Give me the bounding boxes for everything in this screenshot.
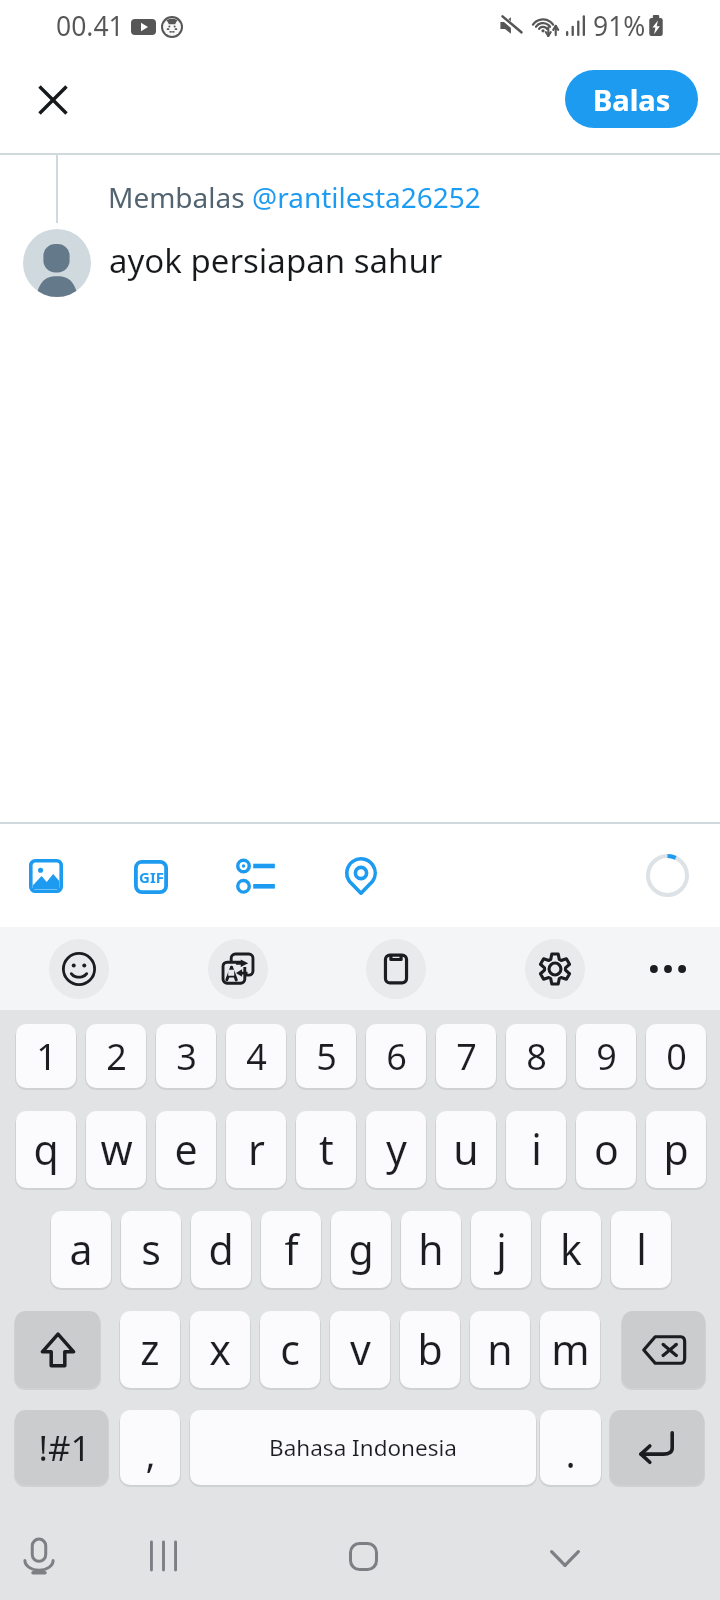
button[interactable]: u <box>436 1111 496 1188</box>
button[interactable]: Recent apps <box>138 1531 188 1581</box>
staticText: f <box>284 1221 299 1277</box>
staticText: 8 <box>526 1032 547 1081</box>
button[interactable]: b <box>400 1311 460 1388</box>
button[interactable]: x <box>190 1311 250 1388</box>
staticText: e <box>174 1121 198 1177</box>
staticText: l <box>636 1221 647 1277</box>
button[interactable]: y <box>366 1111 426 1188</box>
button[interactable]: Enter <box>610 1410 704 1485</box>
button[interactable]: 4 <box>226 1024 286 1088</box>
staticText: GIF <box>139 867 164 887</box>
staticText: Balas <box>593 80 671 119</box>
button[interactable]: r <box>226 1111 286 1188</box>
staticText: 4 <box>246 1032 267 1081</box>
button[interactable]: Shift <box>15 1311 100 1388</box>
staticText: 91% <box>593 8 646 44</box>
button[interactable]: s <box>121 1211 181 1288</box>
button[interactable]: p <box>646 1111 706 1188</box>
button[interactable]: 5 <box>296 1024 356 1088</box>
staticText: v <box>350 1321 371 1377</box>
button[interactable]: a <box>51 1211 111 1288</box>
button[interactable]: Clipboard <box>366 939 426 999</box>
button[interactable]: 3 <box>156 1024 216 1088</box>
staticText: h <box>418 1221 444 1277</box>
button[interactable]: w <box>86 1111 146 1188</box>
button[interactable]: Add photo <box>29 859 63 893</box>
staticText: z <box>140 1321 160 1377</box>
staticText: b <box>417 1321 443 1377</box>
staticText: Membalas <box>108 178 252 216</box>
button[interactable]: 9 <box>576 1024 636 1088</box>
staticText: x <box>209 1321 231 1377</box>
button[interactable]: More options <box>638 939 698 999</box>
button[interactable]: 6 <box>366 1024 426 1088</box>
button[interactable]: Voice input <box>14 1531 64 1581</box>
staticText: Bahasa Indonesia <box>269 1432 457 1463</box>
staticText: s <box>141 1221 161 1277</box>
button[interactable]: j <box>471 1211 531 1288</box>
staticText: 7 <box>456 1032 477 1081</box>
staticText: m <box>551 1321 590 1377</box>
button[interactable]: v <box>330 1311 390 1388</box>
staticText: d <box>208 1221 234 1277</box>
staticText: o <box>594 1121 619 1177</box>
staticText: n <box>487 1321 513 1377</box>
button[interactable]: Keyboard settings <box>525 939 585 999</box>
staticText: . <box>565 1427 576 1479</box>
button[interactable]: 8 <box>506 1024 566 1088</box>
staticText: j <box>496 1221 507 1277</box>
staticText: 9 <box>596 1032 617 1081</box>
staticText: g <box>348 1221 374 1277</box>
button[interactable]: q <box>16 1111 76 1188</box>
button[interactable]: Emoji <box>49 939 109 999</box>
staticText: a <box>69 1221 93 1277</box>
button[interactable]: 7 <box>436 1024 496 1088</box>
staticText: 3 <box>176 1032 197 1081</box>
staticText: 0 <box>666 1032 687 1081</box>
staticText: , <box>145 1427 156 1479</box>
staticText: 2 <box>106 1032 127 1081</box>
staticText: y <box>386 1121 407 1177</box>
staticText: @rantilesta26252 <box>252 178 481 216</box>
button[interactable]: d <box>191 1211 251 1288</box>
button[interactable]: k <box>541 1211 601 1288</box>
staticText: i <box>531 1121 542 1177</box>
button[interactable]: g <box>331 1211 391 1288</box>
staticText: c <box>280 1321 300 1377</box>
button[interactable]: Bahasa Indonesia <box>190 1410 536 1485</box>
button[interactable]: Backspace <box>622 1311 705 1388</box>
staticText: 00.41 <box>56 8 124 44</box>
button[interactable]: f <box>261 1211 321 1288</box>
button[interactable]: 2 <box>86 1024 146 1088</box>
button[interactable]: 1 <box>16 1024 76 1088</box>
button[interactable]: , <box>120 1410 180 1485</box>
button[interactable]: 0 <box>646 1024 706 1088</box>
button[interactable]: l <box>611 1211 671 1288</box>
button[interactable]: !#1 <box>15 1410 108 1485</box>
button[interactable]: Create poll <box>238 859 276 894</box>
button[interactable]: i <box>506 1111 566 1188</box>
button[interactable]: t <box>296 1111 356 1188</box>
button[interactable]: z <box>120 1311 180 1388</box>
staticText: k <box>560 1221 582 1277</box>
button[interactable]: Home <box>338 1531 388 1581</box>
button[interactable]: Translate <box>208 939 268 999</box>
button[interactable]: . <box>540 1410 601 1485</box>
button[interactable]: Add GIF <box>134 860 168 894</box>
staticText: ayok persiapan sahur <box>109 238 443 283</box>
staticText: q <box>33 1121 59 1177</box>
button[interactable]: Balas <box>565 70 698 128</box>
staticText: r <box>248 1121 265 1177</box>
staticText: t <box>319 1121 334 1177</box>
button[interactable]: Close <box>15 70 90 130</box>
staticText: !#1 <box>38 1424 91 1472</box>
button[interactable]: Hide keyboard <box>540 1533 590 1583</box>
button[interactable]: o <box>576 1111 636 1188</box>
button[interactable]: c <box>260 1311 320 1388</box>
button[interactable]: e <box>156 1111 216 1188</box>
button[interactable]: h <box>401 1211 461 1288</box>
staticText: 5 <box>316 1032 337 1081</box>
button[interactable]: m <box>540 1311 600 1388</box>
button[interactable]: n <box>470 1311 530 1388</box>
button[interactable]: Add location <box>345 857 377 895</box>
